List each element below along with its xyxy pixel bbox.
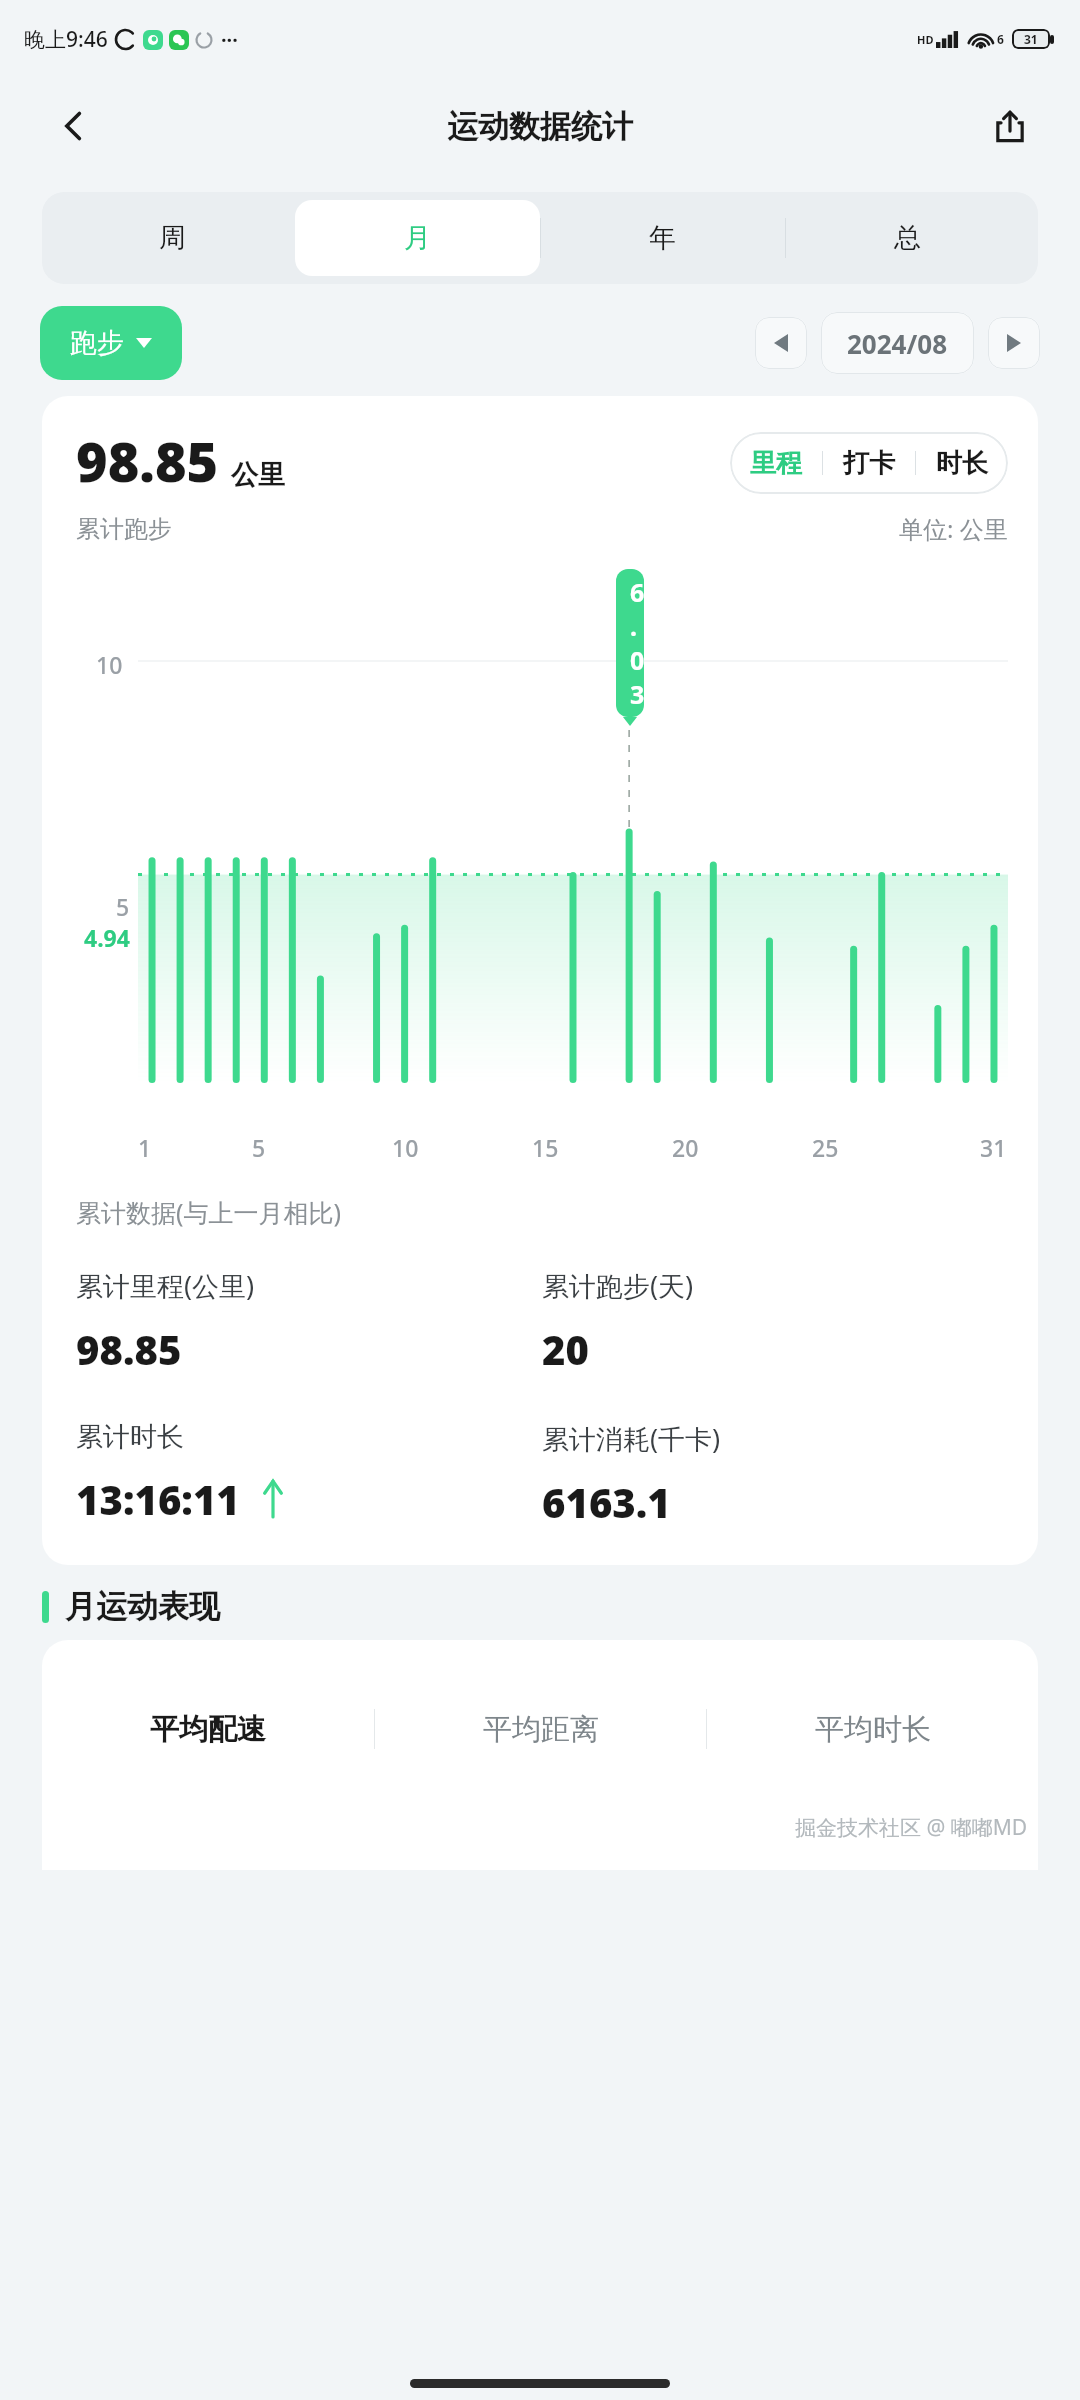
staticText: 平均配速: [150, 1711, 266, 1748]
button[interactable]: 里程: [730, 432, 822, 494]
staticText: 累计跑步(天): [542, 1267, 694, 1304]
staticText: 晚上9:46: [24, 25, 108, 54]
staticText: 31: [1024, 31, 1038, 47]
staticText: 公里: [231, 458, 285, 492]
staticText: 31: [980, 1132, 1008, 1163]
staticText: 4.94: [84, 922, 130, 953]
staticText: 单位: 公里: [899, 512, 1008, 545]
staticText: 月: [404, 221, 431, 255]
button[interactable]: 周: [50, 200, 295, 276]
staticText: 总: [894, 221, 921, 255]
button[interactable]: 总: [785, 200, 1030, 276]
button[interactable]: 2024/08: [821, 312, 974, 374]
button[interactable]: 平均时长: [707, 1694, 1038, 1764]
staticText: 1: [138, 1132, 167, 1163]
staticText: 6163.1: [542, 1475, 671, 1529]
staticText: 平均时长: [815, 1711, 931, 1748]
button[interactable]: 跑步: [40, 306, 182, 380]
staticText: HD: [917, 32, 934, 47]
staticText: 98.85: [76, 424, 219, 498]
staticText: 平均距离: [483, 1711, 599, 1748]
staticText: 20: [542, 1322, 589, 1376]
staticText: 累计时长: [76, 1420, 184, 1454]
staticText: 累计数据(与上一月相比): [76, 1195, 342, 1229]
button[interactable]: 平均配速: [42, 1694, 374, 1764]
staticText: 20: [672, 1132, 700, 1163]
staticText: 5: [116, 891, 130, 922]
staticText: ···: [221, 26, 238, 53]
button[interactable]: Next month: [988, 317, 1040, 369]
button[interactable]: 打卡: [823, 432, 915, 494]
button[interactable]: Previous month: [755, 317, 807, 369]
staticText: 5: [252, 1132, 280, 1163]
button[interactable]: Back: [48, 100, 100, 152]
staticText: 跑步: [70, 326, 124, 360]
staticText: 累计里程(公里): [76, 1267, 255, 1304]
staticText: 时长: [936, 447, 988, 480]
button[interactable]: 年: [540, 200, 785, 276]
staticText: 10: [96, 649, 123, 680]
button[interactable]: Share: [984, 100, 1036, 152]
staticText: 月运动表现: [65, 1587, 220, 1626]
staticText: 打卡: [843, 447, 895, 480]
staticText: 累计消耗(千卡): [542, 1420, 721, 1457]
staticText: 6: [997, 31, 1004, 47]
staticText: 掘金技术社区 @ 嘟嘟MD: [795, 1813, 1028, 1842]
staticText: 周: [159, 221, 186, 255]
button[interactable]: 时长: [916, 432, 1008, 494]
staticText: 运动数据统计: [447, 107, 633, 146]
staticText: 累计跑步: [76, 514, 172, 544]
staticText: 里程: [750, 447, 802, 480]
staticText: 25: [812, 1132, 840, 1163]
button[interactable]: 平均距离: [375, 1694, 706, 1764]
staticText: 2024/08: [847, 326, 948, 361]
staticText: 15: [532, 1132, 560, 1163]
staticText: 年: [649, 221, 676, 255]
staticText: 10: [392, 1132, 420, 1163]
staticText: 13:16:11: [76, 1472, 240, 1526]
button[interactable]: 月: [295, 200, 540, 276]
staticText: 98.85: [76, 1322, 182, 1376]
